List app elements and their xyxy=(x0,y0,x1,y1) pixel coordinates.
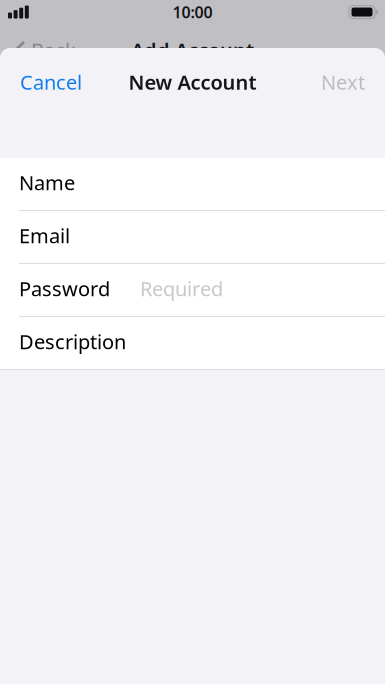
staticText: Name xyxy=(19,169,75,196)
staticText: Email xyxy=(19,222,70,249)
staticText: Next xyxy=(321,69,365,95)
staticText: Description xyxy=(19,328,126,355)
staticText: Password xyxy=(19,275,110,302)
staticText: 10:00 xyxy=(172,1,212,23)
staticText: Required xyxy=(140,275,223,302)
button[interactable]: Description xyxy=(0,317,385,369)
button[interactable]: Cancel xyxy=(16,60,86,104)
staticText: New Account xyxy=(128,69,256,95)
button[interactable]: Name xyxy=(0,158,385,210)
button[interactable]: Email xyxy=(0,211,385,263)
button[interactable]: Back xyxy=(14,31,76,69)
staticText: Add Account xyxy=(131,37,254,63)
staticText: Back xyxy=(31,37,76,63)
staticText: Cancel xyxy=(20,69,82,95)
button[interactable]: Password xyxy=(0,264,385,316)
button[interactable]: Next xyxy=(317,60,369,104)
